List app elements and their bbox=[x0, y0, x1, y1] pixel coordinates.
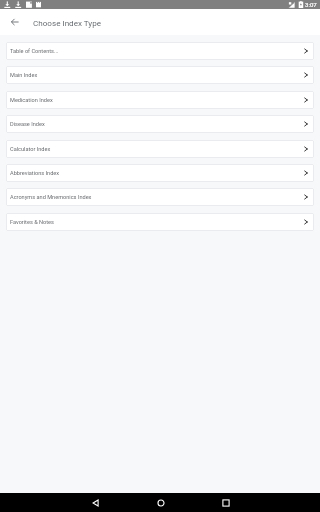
staticText: Choose Index Type bbox=[33, 18, 102, 27]
button[interactable]: Favorites & Notes bbox=[6, 213, 314, 231]
button[interactable]: Home bbox=[143, 493, 178, 512]
staticText: Disease Index bbox=[10, 121, 45, 128]
button[interactable]: Recent apps bbox=[208, 493, 243, 512]
staticText: Abbreviations Index bbox=[10, 170, 60, 177]
button[interactable]: Back bbox=[78, 493, 113, 512]
staticText: Calculator Index bbox=[10, 146, 51, 153]
button[interactable]: Disease Index bbox=[6, 115, 314, 133]
button[interactable]: Navigate up bbox=[7, 14, 23, 30]
staticText: 3:07 bbox=[305, 1, 317, 8]
button[interactable]: Calculator Index bbox=[6, 140, 314, 158]
staticText: Favorites & Notes bbox=[10, 219, 54, 226]
staticText: Table of Contents... bbox=[10, 48, 59, 55]
button[interactable]: Main Index bbox=[6, 66, 314, 84]
button[interactable]: Table of Contents... bbox=[6, 42, 314, 60]
staticText: Acronyms and Mnemonics Index bbox=[10, 194, 92, 201]
button[interactable]: Abbreviations Index bbox=[6, 164, 314, 182]
button[interactable]: Acronyms and Mnemonics Index bbox=[6, 188, 314, 206]
staticText: Medication Index bbox=[10, 97, 53, 104]
staticText: Main Index bbox=[10, 72, 38, 79]
button[interactable]: Medication Index bbox=[6, 91, 314, 109]
